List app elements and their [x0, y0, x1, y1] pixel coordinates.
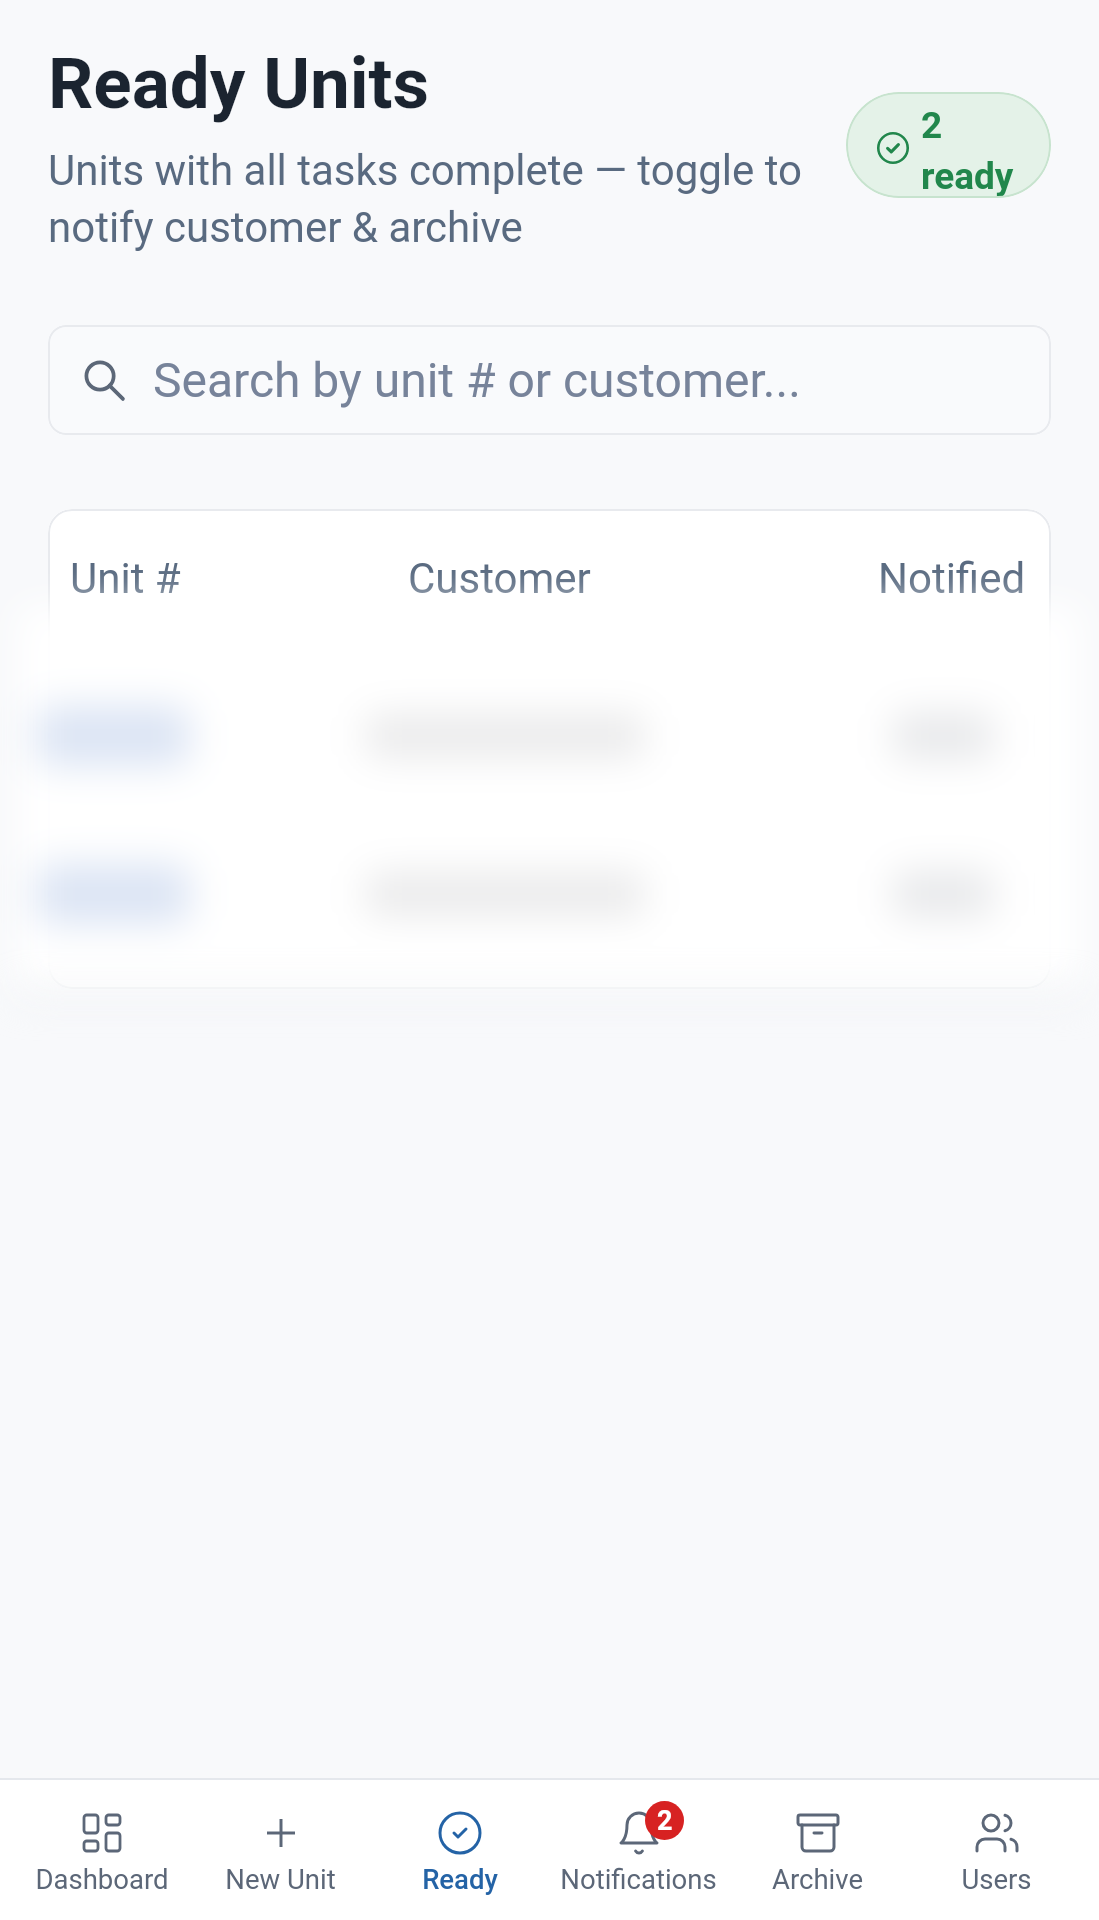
button[interactable]: Search by unit # or customer... [48, 325, 1051, 435]
staticText: Customer [408, 554, 591, 603]
button[interactable]: Dashboard [13, 1780, 191, 1920]
button[interactable]: Ready [370, 1780, 549, 1920]
button[interactable]: Users [907, 1780, 1086, 1920]
button[interactable]: Archive [728, 1780, 907, 1920]
staticText: Ready [422, 1863, 498, 1895]
staticText: Unit # [70, 554, 181, 603]
staticText: Dashboard [35, 1863, 169, 1895]
button[interactable]: New Unit [191, 1780, 370, 1920]
staticText: Notified [878, 554, 1026, 603]
button[interactable]: 2 ready [846, 92, 1051, 198]
staticText: Ready Units [48, 42, 430, 125]
staticText: 2 [657, 1805, 673, 1837]
staticText: Search by unit # or customer... [153, 352, 801, 408]
staticText: Users [961, 1863, 1032, 1895]
staticText: Notifications [560, 1863, 717, 1895]
button[interactable]: 2 [549, 1780, 728, 1920]
staticText: New Unit [225, 1863, 336, 1895]
staticText: Archive [772, 1863, 863, 1895]
staticText: 2 ready [921, 104, 1021, 198]
staticText: Units with all tasks complete — toggle t… [48, 146, 838, 252]
